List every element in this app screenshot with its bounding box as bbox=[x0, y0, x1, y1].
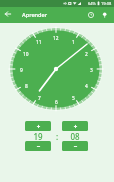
staticText: 6 bbox=[55, 99, 58, 106]
staticText: 5 bbox=[72, 95, 75, 102]
staticText: 2 bbox=[85, 51, 88, 58]
staticText: 10 bbox=[23, 51, 29, 58]
staticText: 3 bbox=[90, 67, 93, 74]
staticText: : bbox=[56, 131, 59, 141]
staticText: 7 bbox=[38, 95, 41, 102]
staticText: 8 bbox=[25, 83, 28, 90]
staticText: 08 bbox=[70, 131, 80, 141]
button[interactable]: Increase bbox=[25, 121, 51, 131]
staticText: Aprender bbox=[22, 11, 48, 19]
button[interactable]: Increase bbox=[62, 121, 88, 131]
button[interactable]: Back bbox=[1, 7, 15, 21]
staticText: 11 bbox=[36, 39, 42, 46]
button[interactable]: Time bbox=[84, 8, 98, 22]
staticText: 19:08 bbox=[101, 1, 112, 6]
button[interactable]: Decrease bbox=[25, 141, 51, 151]
button[interactable]: Decrease bbox=[62, 141, 88, 151]
staticText: 12 bbox=[53, 35, 59, 42]
staticText: 1 bbox=[72, 39, 75, 46]
staticText: 4 bbox=[85, 83, 88, 90]
staticText: 9 bbox=[20, 67, 23, 74]
button[interactable]: Sound bbox=[98, 8, 112, 22]
staticText: 64% bbox=[88, 1, 96, 6]
staticText: 19 bbox=[33, 131, 43, 141]
